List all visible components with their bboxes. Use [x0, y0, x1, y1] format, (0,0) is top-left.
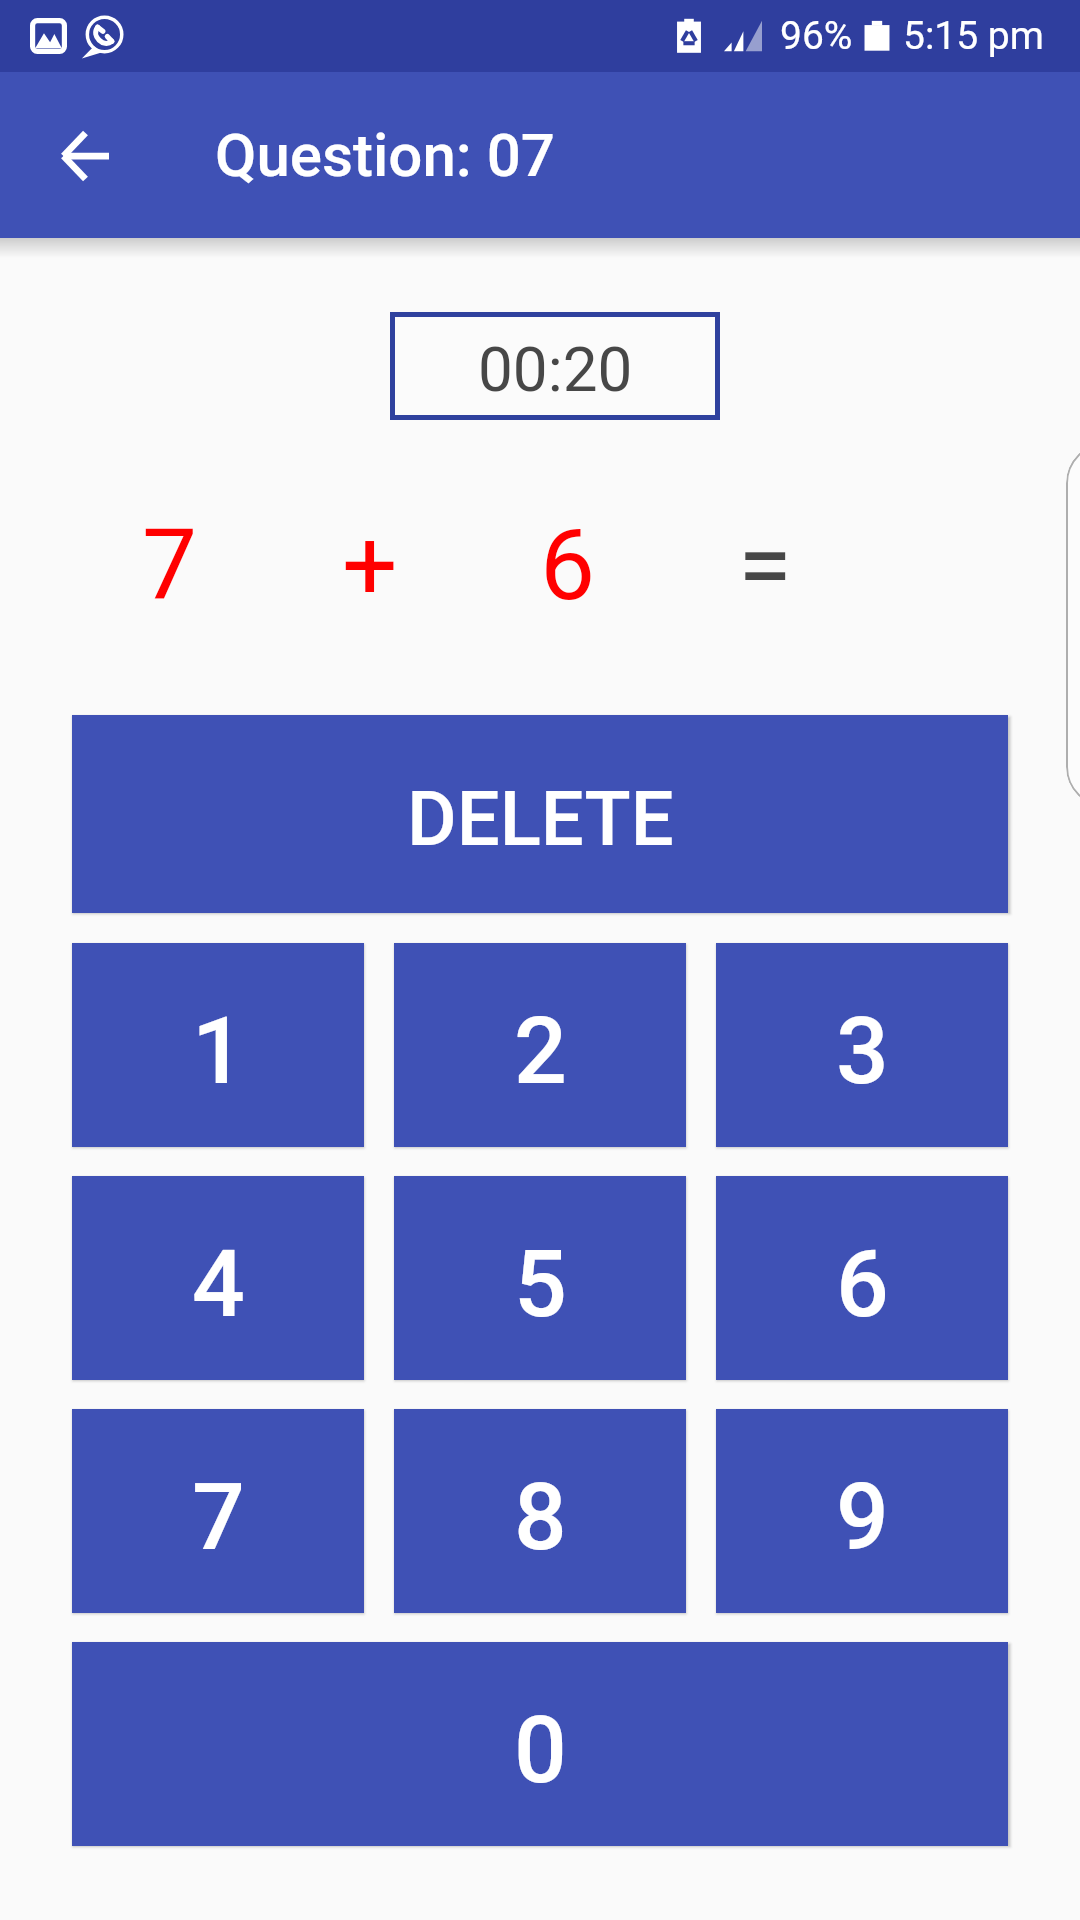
staticText: Question: 07 [215, 120, 555, 190]
staticText: = [738, 508, 792, 623]
staticText: + [342, 508, 398, 623]
button[interactable]: 1 [72, 943, 364, 1147]
staticText: 8 [514, 1463, 567, 1572]
staticText: 9 [836, 1463, 889, 1572]
staticText: 7 [142, 508, 198, 623]
staticText: 7 [192, 1463, 245, 1572]
button[interactable]: 9 [716, 1409, 1008, 1613]
staticText: 6 [836, 1230, 889, 1339]
button[interactable]: Answer [1066, 443, 1080, 807]
button[interactable]: 3 [716, 943, 1008, 1147]
staticText: 2 [514, 997, 567, 1106]
staticText: 6 [540, 508, 596, 623]
staticText: 5:15 pm [903, 13, 1044, 59]
staticText: 4 [192, 1230, 245, 1339]
button[interactable]: 6 [716, 1176, 1008, 1380]
staticText: 96% [780, 13, 853, 59]
button[interactable]: 2 [394, 943, 686, 1147]
staticText: 0 [514, 1696, 567, 1805]
button[interactable]: 7 [72, 1409, 364, 1613]
button[interactable]: Back [0, 72, 168, 238]
button[interactable]: 8 [394, 1409, 686, 1613]
staticText: DELETE [407, 774, 674, 863]
button[interactable]: 5 [394, 1176, 686, 1380]
staticText: 1 [192, 997, 245, 1106]
button[interactable]: DELETE [72, 715, 1008, 913]
button[interactable]: 0 [72, 1642, 1008, 1846]
button[interactable]: 4 [72, 1176, 364, 1380]
staticText: 3 [836, 997, 889, 1106]
staticText: 5 [514, 1230, 567, 1339]
staticText: 00:20 [478, 333, 633, 406]
